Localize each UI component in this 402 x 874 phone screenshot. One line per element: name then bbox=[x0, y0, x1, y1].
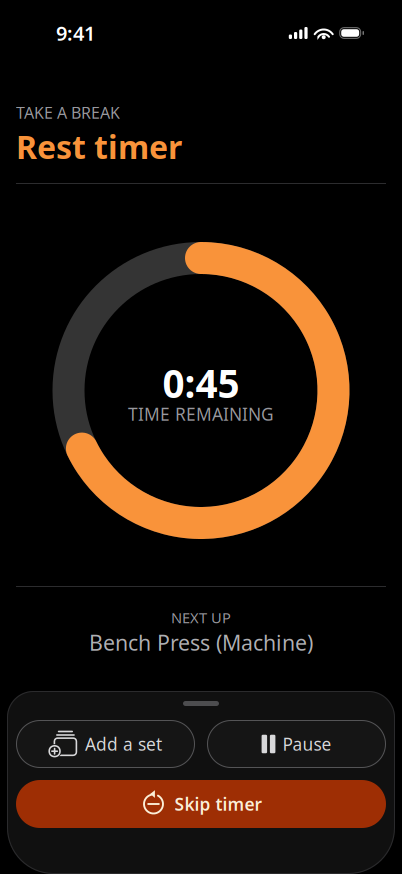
staticText: Bench Press (Machine) bbox=[89, 628, 313, 657]
staticText: TAKE A BREAK bbox=[16, 102, 120, 123]
staticText: NEXT UP bbox=[171, 608, 231, 627]
staticText: Pause bbox=[282, 732, 331, 755]
staticText: Rest timer bbox=[16, 125, 182, 168]
staticText: Skip timer bbox=[174, 792, 262, 815]
staticText: Add a set bbox=[85, 732, 162, 755]
staticText: 0:45 bbox=[162, 357, 239, 409]
button[interactable]: Pause bbox=[207, 720, 386, 768]
staticText: 9:41 bbox=[56, 20, 95, 46]
button[interactable]: Add a set bbox=[16, 720, 195, 768]
staticText: TIME REMAINING bbox=[128, 402, 274, 425]
button[interactable]: Skip timer bbox=[16, 780, 386, 828]
